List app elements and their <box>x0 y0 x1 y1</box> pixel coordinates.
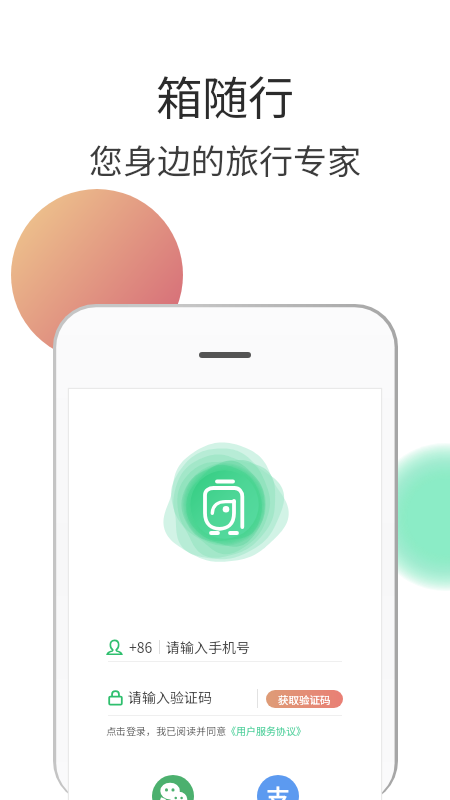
staticText: 《用户服务协议》 <box>226 723 306 737</box>
staticText: 获取验证码 <box>278 692 331 707</box>
staticText: 您身边的旅行专家 <box>89 135 361 184</box>
button[interactable]: +86 <box>106 635 342 659</box>
button[interactable]: 获取验证码 <box>266 690 343 708</box>
staticText: 请输入手机号 <box>166 637 250 657</box>
button[interactable]: Alipay login <box>257 775 299 800</box>
button[interactable]: 点击登录，我已阅读并同意 <box>106 721 306 739</box>
staticText: 支 <box>266 779 290 800</box>
staticText: 点击登录，我已阅读并同意 <box>106 723 226 737</box>
staticText: 箱随行 <box>156 62 294 129</box>
staticText: +86 <box>129 637 153 657</box>
staticText: 请输入验证码 <box>128 687 212 707</box>
button[interactable]: 请输入验证码 <box>108 686 258 708</box>
button[interactable]: WeChat login <box>152 775 194 800</box>
